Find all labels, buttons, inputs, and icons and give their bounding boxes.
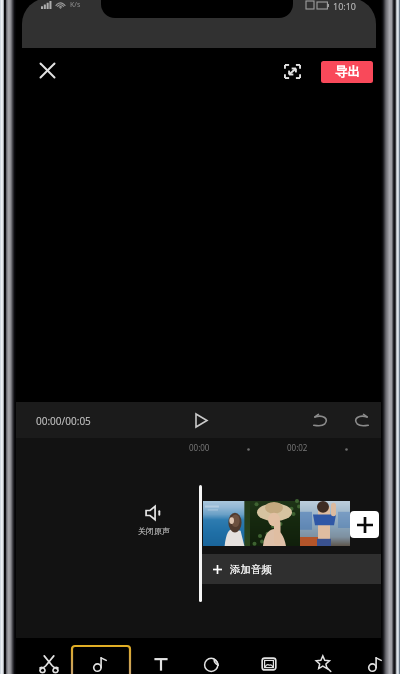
staticText: 添加音频	[230, 563, 272, 576]
staticText: 00:00/00:05	[36, 414, 91, 428]
button[interactable]: Undo	[306, 405, 336, 435]
button[interactable]: Add clip	[350, 511, 379, 538]
button[interactable]: Close	[31, 54, 64, 87]
button[interactable]: Sticker	[186, 638, 238, 674]
button[interactable]: Audio	[75, 638, 127, 674]
button[interactable]: Play	[186, 405, 216, 435]
button[interactable]: Redo	[346, 405, 376, 435]
button[interactable]: 添加音频	[202, 554, 381, 584]
staticText: 关闭原声	[138, 526, 170, 536]
button[interactable]	[250, 501, 300, 546]
button[interactable]: Fullscreen	[275, 54, 309, 88]
button[interactable]: Overlay	[243, 638, 295, 674]
button[interactable]: Cut	[23, 638, 75, 674]
staticText: 00:02	[287, 442, 308, 453]
button[interactable]: 导出	[321, 61, 373, 83]
button[interactable]	[203, 501, 250, 546]
staticText: 10:10	[333, 0, 357, 10]
button[interactable]: 关闭原声	[131, 506, 176, 536]
staticText: 00:00	[189, 442, 210, 453]
staticText: 导出	[335, 64, 360, 80]
button[interactable]	[300, 501, 350, 546]
button[interactable]: Text	[135, 638, 187, 674]
button[interactable]: Effects	[298, 638, 350, 674]
button[interactable]: Filter	[350, 638, 400, 674]
staticText: K/s	[70, 0, 81, 10]
